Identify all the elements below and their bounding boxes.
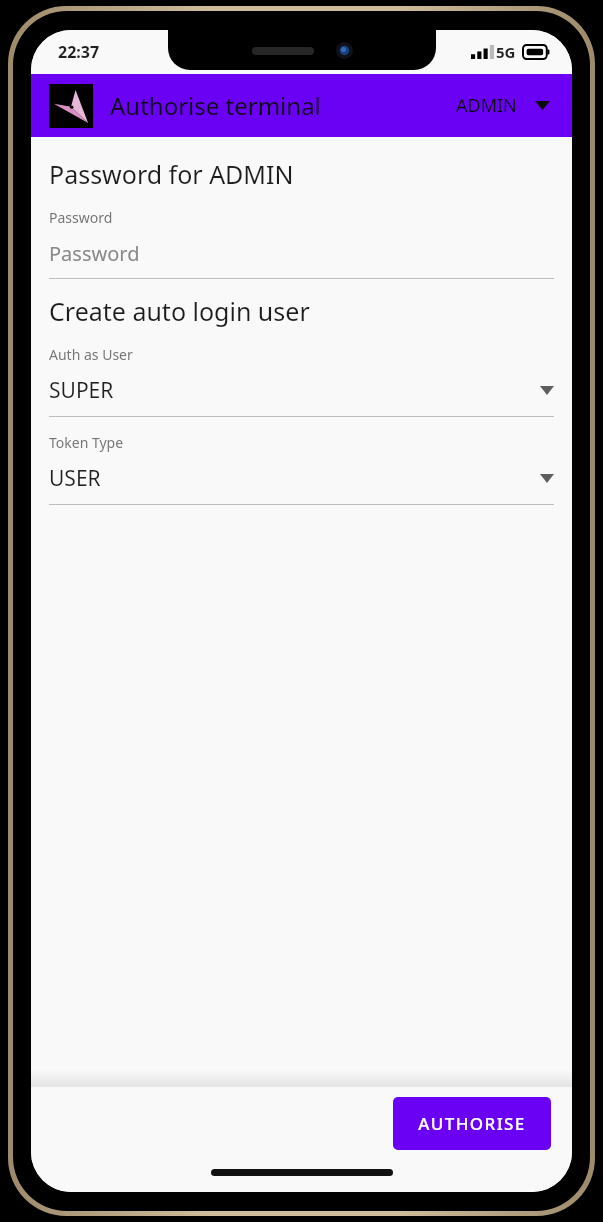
button[interactable]: AUTHORISE (393, 1097, 551, 1150)
staticText: Token Type (49, 433, 124, 452)
staticText: Auth as User (49, 345, 133, 364)
staticText: AUTHORISE (418, 1112, 526, 1135)
staticText: Create auto login user (49, 294, 310, 328)
staticText: Password for ADMIN (49, 157, 294, 191)
other: App logo (49, 84, 93, 128)
staticText: ADMIN (456, 93, 517, 118)
button[interactable]: Password (49, 240, 554, 279)
staticText: USER (49, 464, 101, 493)
staticText: Password (49, 240, 140, 267)
staticText: Password (49, 208, 113, 227)
button[interactable]: Auth as User (49, 345, 554, 417)
button[interactable]: ADMIN (452, 87, 554, 124)
staticText: Authorise terminal (110, 89, 321, 122)
staticText: 5G (496, 42, 516, 62)
staticText: SUPER (49, 376, 114, 405)
button[interactable]: Token Type (49, 433, 554, 505)
staticText: 22:37 (58, 41, 100, 63)
